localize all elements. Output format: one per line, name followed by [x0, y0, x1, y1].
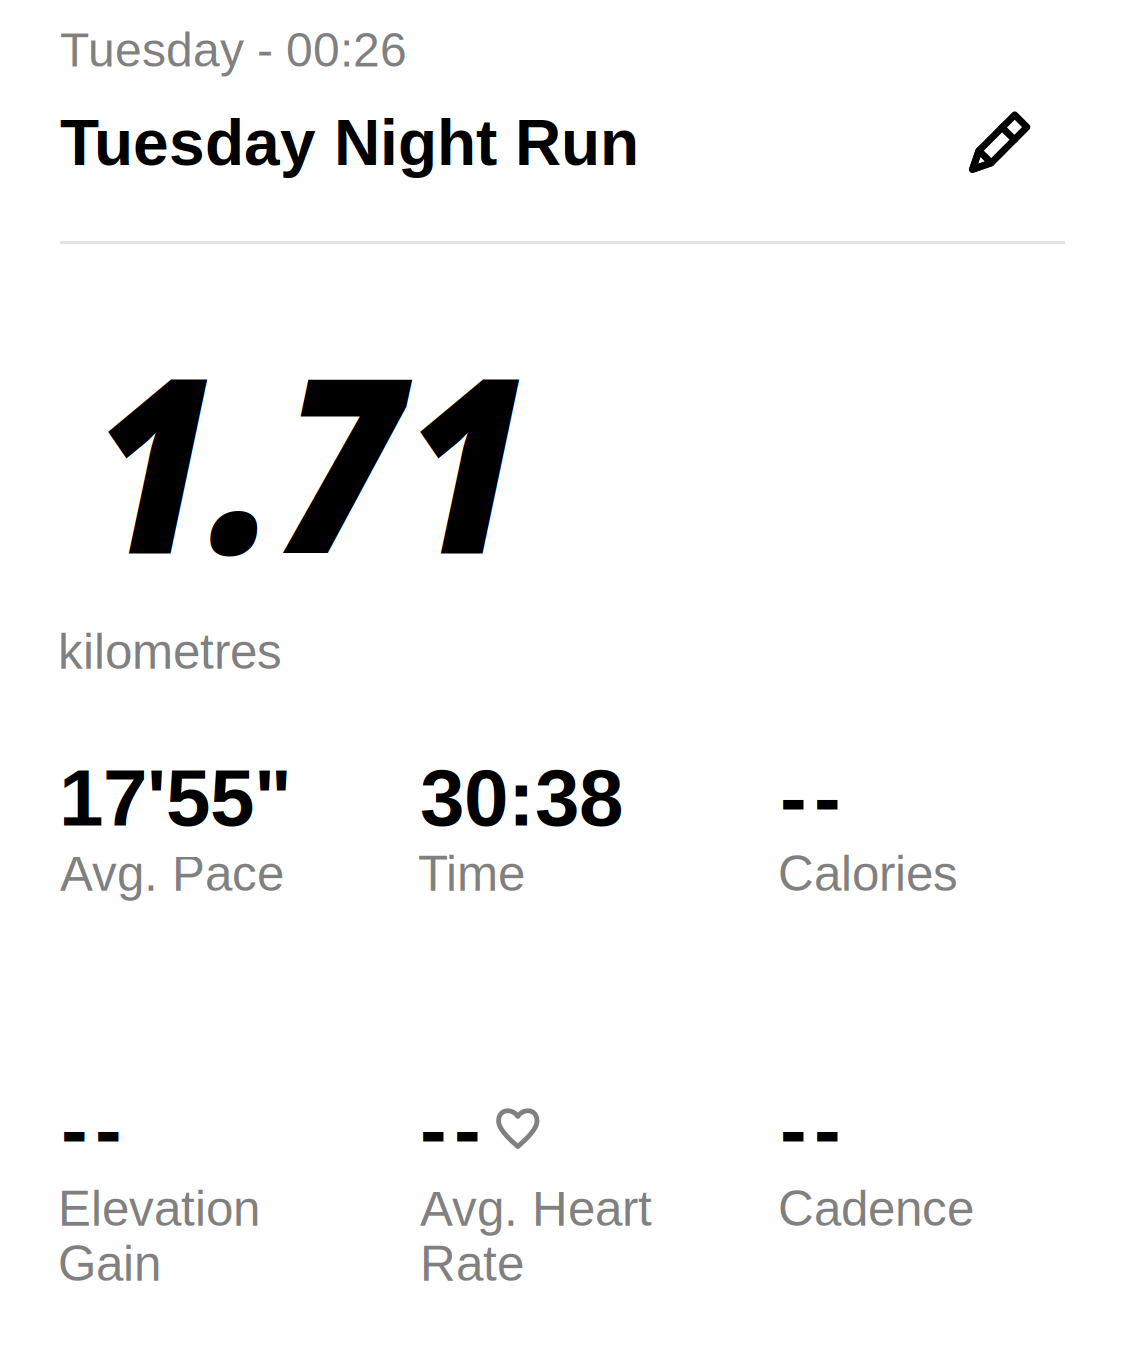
staticText: 30:38 [420, 753, 623, 842]
staticText: 1.71 [88, 294, 523, 624]
staticText: -- [780, 753, 841, 842]
staticText: Avg. Pace [60, 846, 284, 901]
staticText: Avg. Heart Rate [420, 1181, 652, 1291]
staticText: Tuesday Night Run [60, 107, 639, 178]
staticText: Cadence [778, 1181, 974, 1236]
staticText: -- [420, 1085, 481, 1174]
staticText: Calories [778, 846, 958, 901]
staticText: Tuesday - 00:26 [60, 23, 407, 77]
staticText: Elevation Gain [58, 1181, 260, 1291]
staticText: 17'55" [59, 753, 292, 842]
staticText: -- [61, 1085, 122, 1174]
staticText: kilometres [58, 624, 282, 679]
staticText: -- [780, 1085, 841, 1174]
staticText: Time [418, 846, 525, 901]
button[interactable]: Edit workout name [946, 91, 1050, 195]
